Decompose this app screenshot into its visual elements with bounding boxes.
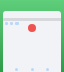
button[interactable] <box>5 22 8 25</box>
button[interactable] <box>15 22 19 25</box>
button[interactable] <box>10 22 13 25</box>
button[interactable]: Nav <box>46 68 49 71</box>
button[interactable]: Nav <box>15 68 18 71</box>
button[interactable]: Nav <box>31 68 34 71</box>
